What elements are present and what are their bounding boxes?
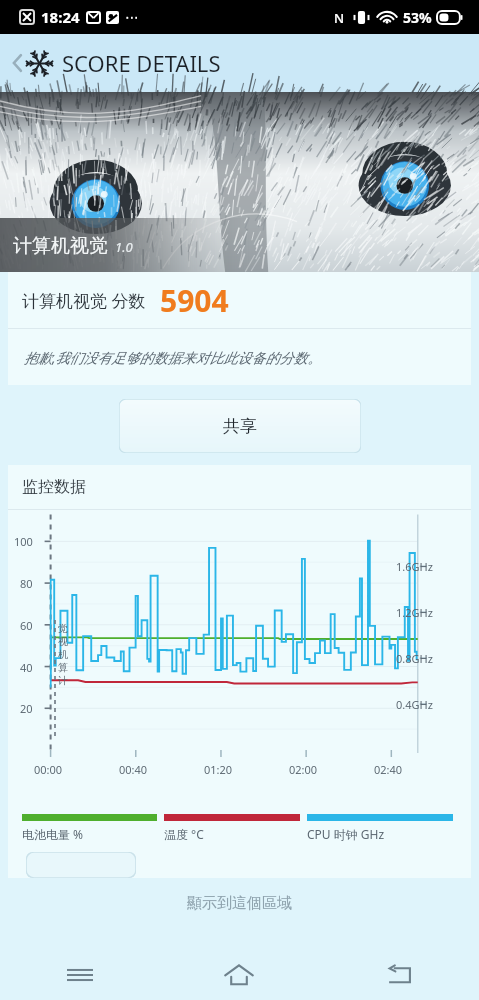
staticText: 0.8GHz (396, 651, 433, 666)
staticText: 计算机视觉 分数 (22, 289, 146, 312)
staticText: 1.0 (115, 238, 133, 256)
staticText: 01:20 (204, 762, 233, 777)
staticText: 80 (20, 576, 33, 591)
staticText: N (334, 9, 345, 27)
button[interactable]: Recent apps (0, 950, 159, 1000)
button[interactable]: Home (159, 950, 319, 1000)
staticText: 53% (403, 8, 432, 27)
staticText: 温度 °C (164, 826, 204, 842)
button[interactable]: 共享 (119, 399, 361, 453)
staticText: 视 (58, 635, 68, 648)
staticText: 觉 (58, 622, 68, 635)
staticText: 02:40 (374, 762, 403, 777)
staticText: CPU 时钟 GHz (307, 826, 385, 842)
staticText: 5904 (160, 280, 229, 321)
staticText: 100 (14, 534, 33, 549)
button[interactable]: Back (319, 950, 479, 1000)
staticText: 监控数据 (22, 477, 86, 497)
staticText: 1.6GHz (396, 559, 433, 574)
staticText: 电池电量 % (22, 826, 84, 842)
staticText: 共享 (223, 416, 257, 437)
staticText: 算 (58, 661, 68, 674)
staticText: 18:24 (41, 7, 80, 27)
staticText: 抱歉,我们没有足够的数据来对比此设备的分数。 (24, 348, 322, 367)
staticText: 60 (20, 618, 33, 633)
staticText: 0.4GHz (396, 697, 433, 712)
staticText: 顯示到這個區域 (187, 894, 292, 913)
button[interactable]: Back (6, 48, 225, 78)
button[interactable] (26, 852, 136, 878)
staticText: 机 (58, 648, 68, 661)
staticText: 00:40 (119, 762, 148, 777)
staticText: 20 (20, 701, 33, 716)
staticText: 40 (20, 660, 33, 675)
staticText: SCORE DETAILS (62, 48, 221, 78)
staticText: 计算机视觉 (13, 234, 108, 258)
staticText: 1.2GHz (396, 605, 433, 620)
staticText: 00:00 (34, 762, 63, 777)
staticText: 计 (58, 674, 68, 687)
staticText: ⋯ (125, 9, 139, 25)
staticText: 02:00 (289, 762, 318, 777)
